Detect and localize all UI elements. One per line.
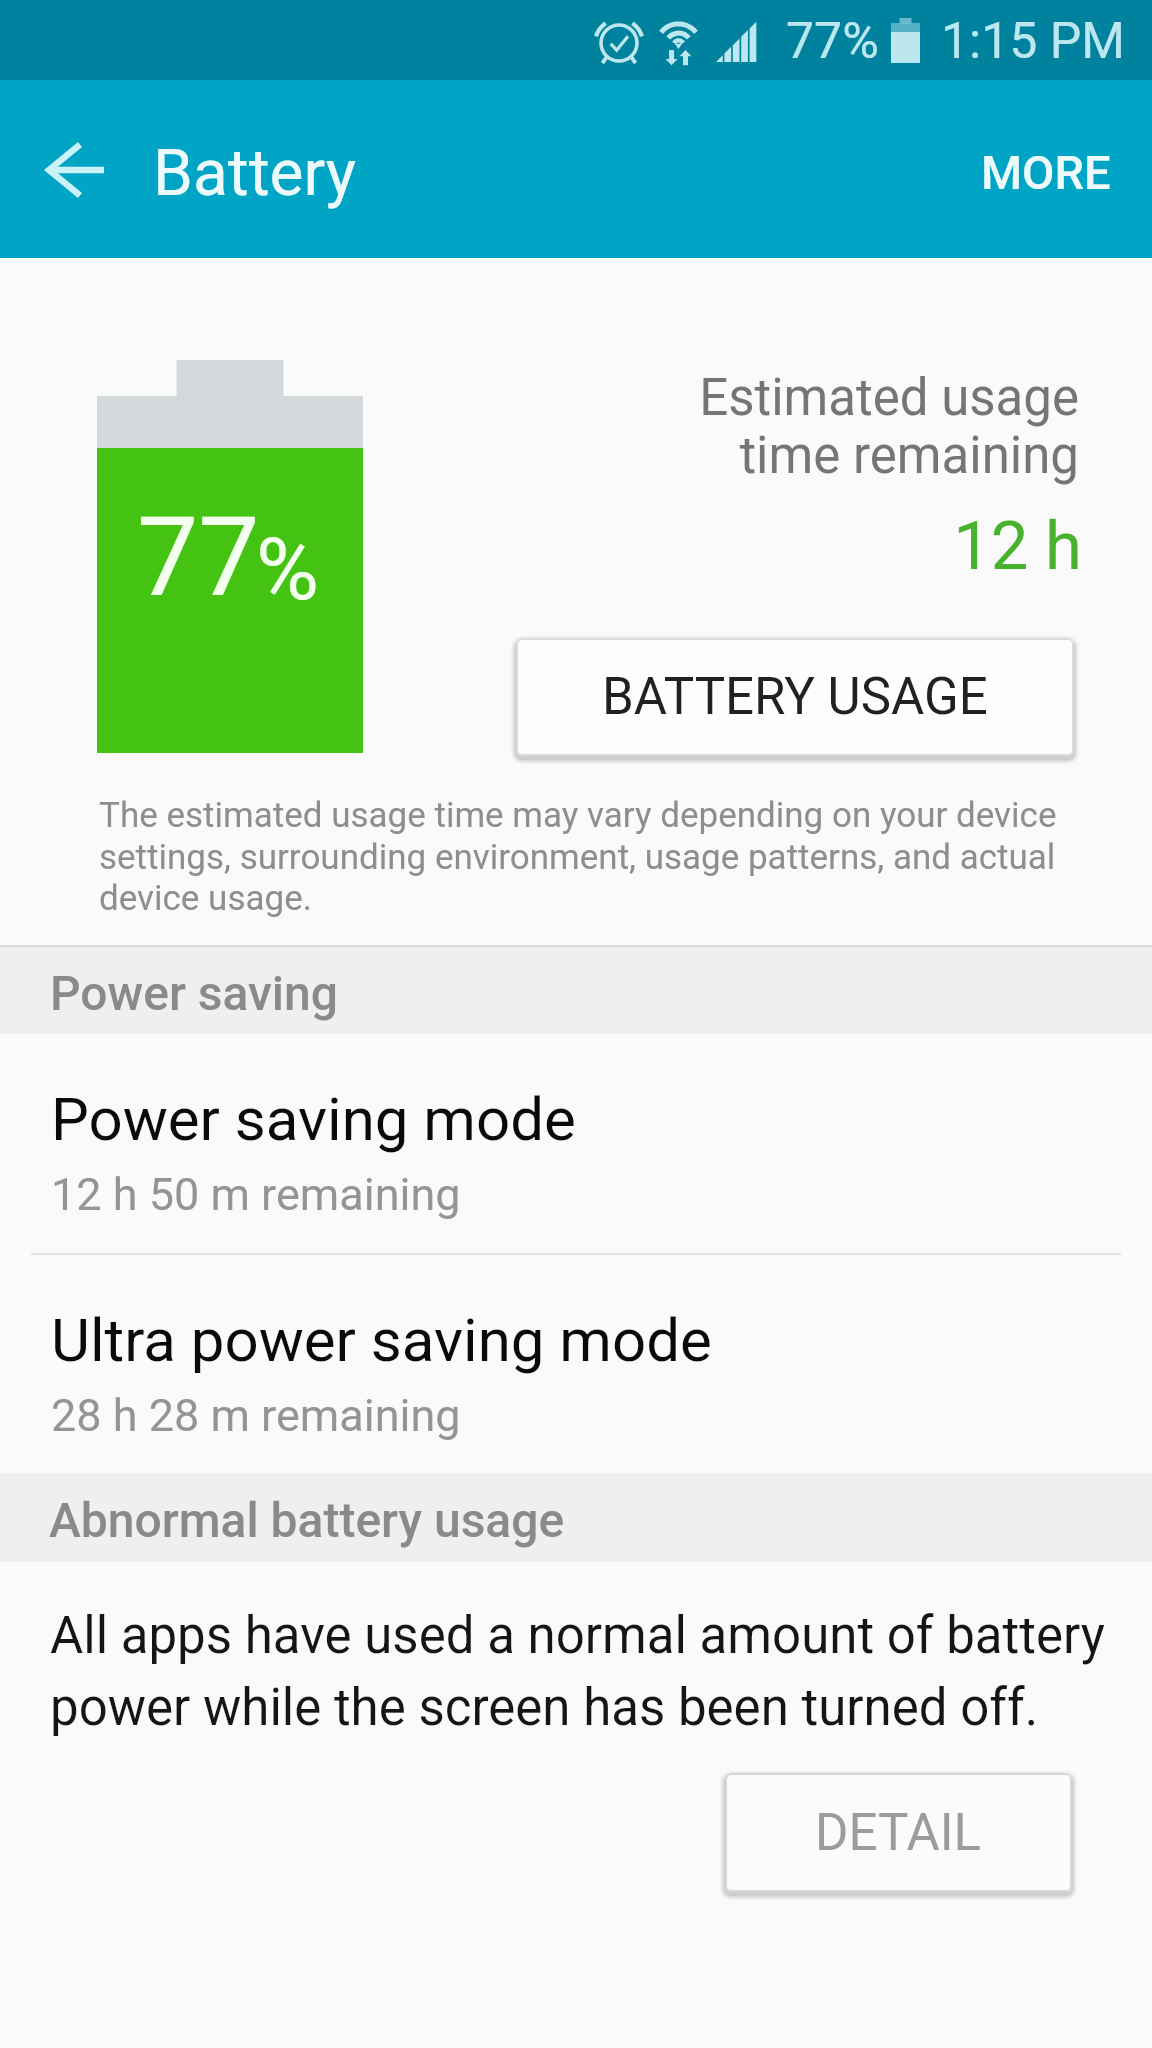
- staticText: Power saving mode: [51, 1084, 576, 1154]
- staticText: 12 h 50 m remaining: [51, 1168, 461, 1221]
- staticText: All apps have used a normal amount of ba…: [50, 1606, 1115, 1737]
- staticText: Battery: [153, 136, 357, 211]
- staticText: Estimated usage time remaining: [400, 368, 1079, 485]
- staticText: 77%: [786, 12, 879, 71]
- staticText: 28 h 28 m remaining: [51, 1389, 461, 1442]
- button[interactable]: DETAIL: [725, 1773, 1072, 1892]
- staticText: Ultra power saving mode: [51, 1305, 712, 1375]
- staticText: Power saving: [50, 965, 338, 1021]
- staticText: BATTERY USAGE: [602, 667, 988, 727]
- button[interactable]: Power saving mode: [0, 1034, 1152, 1254]
- staticText: 12 h: [400, 507, 1082, 586]
- button[interactable]: Ultra power saving mode: [0, 1255, 1152, 1471]
- staticText: 77: [137, 494, 260, 622]
- staticText: The estimated usage time may vary depend…: [99, 795, 1099, 918]
- staticText: Abnormal battery usage: [49, 1492, 565, 1548]
- button[interactable]: BATTERY USAGE: [516, 638, 1074, 756]
- staticText: 1:15 PM: [941, 12, 1126, 71]
- staticText: DETAIL: [815, 1803, 982, 1863]
- staticText: %: [256, 519, 319, 620]
- button[interactable]: Navigate up: [12, 114, 142, 226]
- button[interactable]: MORE: [947, 107, 1152, 233]
- staticText: MORE: [981, 145, 1111, 200]
